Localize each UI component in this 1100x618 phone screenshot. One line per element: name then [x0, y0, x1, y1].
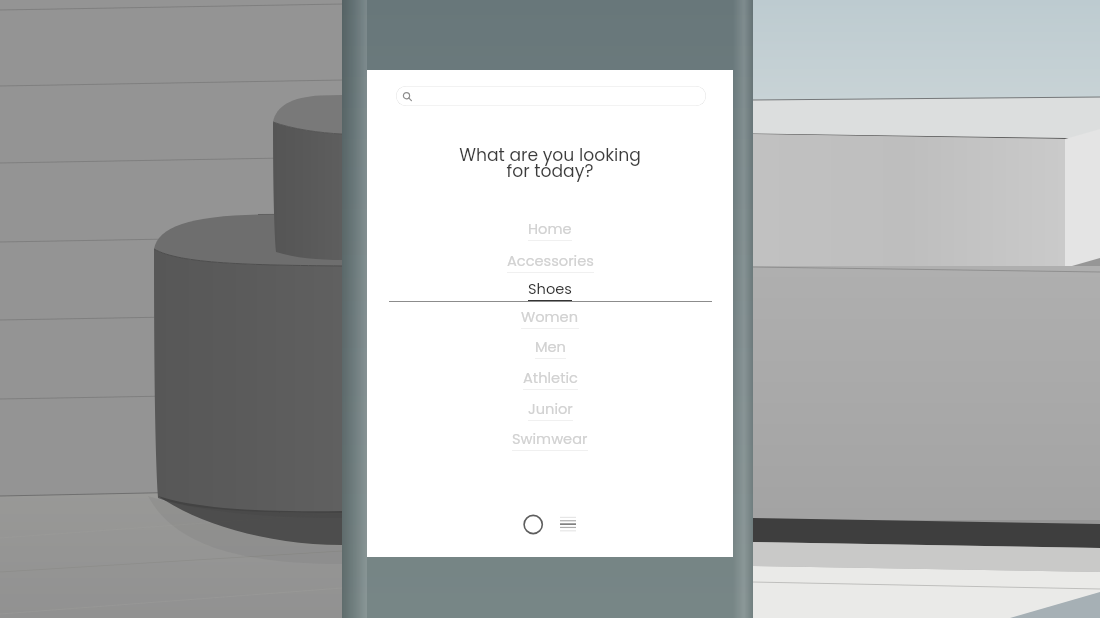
button[interactable]: Home [367, 219, 733, 245]
button[interactable]: Accessories [367, 251, 733, 277]
staticText: Athletic [523, 368, 578, 388]
button[interactable]: Home [521, 512, 546, 537]
staticText: Junior [528, 399, 573, 419]
button[interactable]: Search [396, 86, 706, 106]
button[interactable]: Women [367, 307, 733, 333]
staticText: Swimwear [512, 429, 588, 449]
staticText: Home [528, 219, 572, 239]
button[interactable]: Men [367, 337, 733, 363]
staticText: Women [521, 307, 579, 327]
staticText: What are you looking for today? [367, 143, 733, 183]
button[interactable]: Menu [554, 510, 580, 536]
staticText: Shoes [528, 279, 572, 299]
button[interactable]: Swimwear [367, 429, 733, 455]
button[interactable]: Junior [367, 399, 733, 425]
button[interactable]: Shoes [367, 279, 733, 305]
staticText: Accessories [507, 251, 594, 271]
button[interactable]: Athletic [367, 368, 733, 394]
staticText: Men [535, 337, 566, 357]
